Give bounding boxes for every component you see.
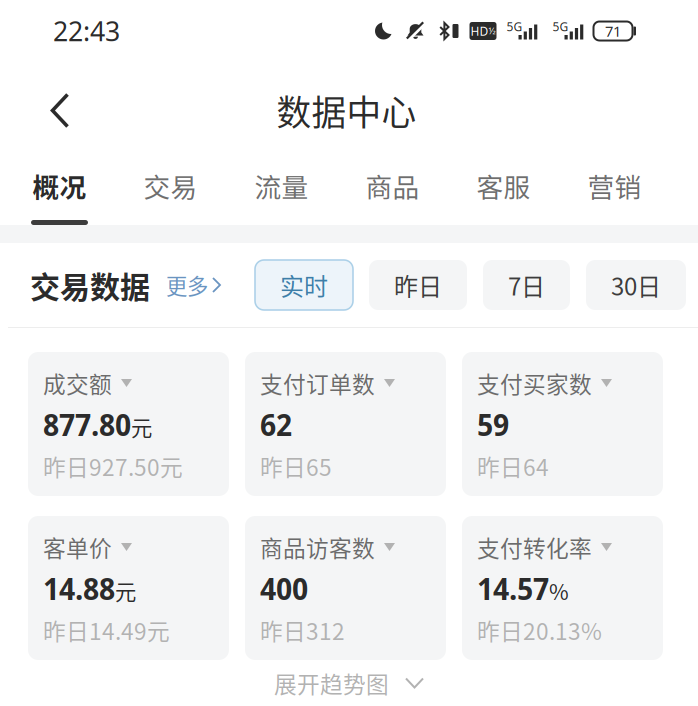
staticText: 概况 <box>32 166 86 205</box>
staticText: 元 <box>115 575 136 606</box>
staticText: 7日 <box>508 268 545 302</box>
button[interactable]: 客单价 <box>28 516 229 660</box>
staticText: 昨日927.50元 <box>43 450 183 482</box>
button[interactable]: 30日 <box>586 260 686 310</box>
staticText: 成交额 <box>43 367 112 399</box>
staticText: 昨日 <box>394 268 442 302</box>
staticText: 62 <box>260 403 292 445</box>
button[interactable]: 支付订单数 <box>245 352 446 496</box>
staticText: 交易 <box>143 166 197 205</box>
staticText: 交易数据 <box>30 263 150 307</box>
button[interactable]: 展开趋势图 <box>260 660 438 706</box>
staticText: 昨日14.49元 <box>43 614 170 646</box>
staticText: 59 <box>477 403 509 445</box>
staticText: HD <box>470 23 488 39</box>
staticText: % <box>549 575 569 606</box>
staticText: 14.57 <box>477 567 549 609</box>
button[interactable]: 7日 <box>483 260 570 310</box>
staticText: 71 <box>605 21 621 41</box>
staticText: 昨日65 <box>260 450 332 482</box>
button[interactable]: 昨日 <box>369 260 467 310</box>
staticText: 877.80 <box>43 403 131 445</box>
staticText: 30日 <box>611 268 661 302</box>
button[interactable]: 流量 <box>226 159 337 225</box>
staticText: 数据中心 <box>276 85 416 136</box>
button[interactable]: 概况 <box>4 159 115 225</box>
staticText: 实时 <box>280 268 328 302</box>
staticText: 14.88 <box>43 567 115 609</box>
staticText: 商品 <box>365 166 419 205</box>
staticText: 支付订单数 <box>260 367 375 399</box>
button[interactable]: 实时 <box>255 260 353 310</box>
staticText: 支付转化率 <box>477 531 592 563</box>
staticText: 昨日312 <box>260 614 345 646</box>
button[interactable]: 商品 <box>337 159 448 225</box>
staticText: 展开趋势图 <box>274 667 389 699</box>
staticText: 营销 <box>587 166 641 205</box>
staticText: 昨日64 <box>477 450 549 482</box>
button[interactable]: Back <box>0 74 120 146</box>
staticText: ½ <box>488 25 495 37</box>
button[interactable]: 成交额 <box>28 352 229 496</box>
staticText: 客单价 <box>43 531 112 563</box>
button[interactable]: 支付买家数 <box>462 352 663 496</box>
button[interactable]: 交易 <box>115 159 226 225</box>
staticText: 元 <box>131 411 152 442</box>
staticText: 更多 <box>166 270 208 300</box>
staticText: 支付买家数 <box>477 367 592 399</box>
button[interactable]: 营销 <box>559 159 670 225</box>
button[interactable]: 客服 <box>448 159 559 225</box>
button[interactable]: 商品访客数 <box>245 516 446 660</box>
staticText: 昨日20.13% <box>477 614 602 646</box>
button[interactable]: 更多 <box>150 262 221 308</box>
staticText: 客服 <box>476 166 530 205</box>
staticText: 流量 <box>254 166 308 205</box>
staticText: 22:43 <box>53 13 120 49</box>
button[interactable]: 支付转化率 <box>462 516 663 660</box>
staticText: 5G <box>506 18 522 35</box>
staticText: 400 <box>260 567 308 609</box>
staticText: 5G <box>552 18 568 35</box>
staticText: 商品访客数 <box>260 531 375 563</box>
